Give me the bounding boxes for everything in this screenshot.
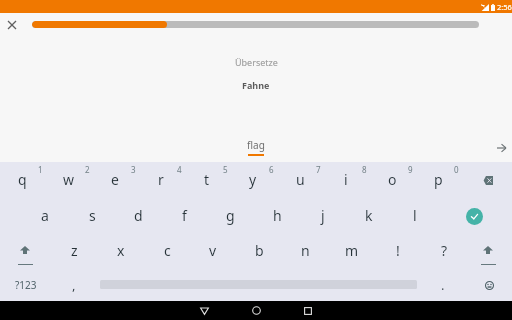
staticText: f xyxy=(182,206,187,225)
staticText: 5 xyxy=(223,164,228,175)
staticText: 9 xyxy=(408,164,413,175)
button[interactable]: a xyxy=(22,199,68,234)
staticText: l xyxy=(413,206,417,225)
staticText: q xyxy=(18,170,27,189)
staticText: m xyxy=(345,241,359,260)
button[interactable]: v xyxy=(190,234,236,269)
staticText: 4 xyxy=(177,164,182,175)
staticText: i xyxy=(344,170,348,189)
button[interactable]: r xyxy=(138,162,184,199)
staticText: ! xyxy=(396,241,400,260)
button[interactable]: j xyxy=(300,199,346,234)
button[interactable]: y xyxy=(230,162,276,199)
button[interactable]: Backspace xyxy=(464,162,511,199)
button[interactable]: d xyxy=(115,199,161,234)
staticText: d xyxy=(134,206,143,225)
button[interactable]: e xyxy=(92,162,138,199)
staticText: . xyxy=(441,276,445,294)
staticText: n xyxy=(301,241,310,260)
button[interactable]: x xyxy=(98,234,144,269)
button[interactable]: s xyxy=(69,199,115,234)
staticText: 1 xyxy=(38,164,43,175)
button[interactable]: . xyxy=(421,269,465,301)
staticText: z xyxy=(71,241,78,260)
button[interactable]: f xyxy=(161,199,207,234)
button[interactable]: h xyxy=(254,199,300,234)
staticText: k xyxy=(365,206,373,225)
button[interactable]: Back xyxy=(186,301,222,320)
button[interactable]: Recents xyxy=(290,301,326,320)
staticText: flag xyxy=(247,138,265,152)
button[interactable]: Close xyxy=(2,15,21,34)
button[interactable]: Emoji xyxy=(467,269,511,301)
button[interactable]: l xyxy=(392,199,438,234)
button[interactable]: z xyxy=(51,234,97,269)
staticText: g xyxy=(226,206,235,225)
button[interactable]: Space xyxy=(98,269,419,301)
button[interactable]: Home xyxy=(238,301,274,320)
staticText: Übersetze xyxy=(235,56,278,68)
button[interactable]: k xyxy=(346,199,392,234)
staticText: 0 xyxy=(454,164,459,175)
button[interactable]: b xyxy=(236,234,282,269)
staticText: Fahne xyxy=(242,79,270,91)
staticText: y xyxy=(249,170,257,189)
button[interactable]: c xyxy=(144,234,190,269)
button[interactable]: , xyxy=(52,269,96,301)
staticText: h xyxy=(273,206,282,225)
staticText: e xyxy=(111,170,119,189)
staticText: 3 xyxy=(131,164,136,175)
staticText: j xyxy=(321,206,325,225)
staticText: ? xyxy=(441,241,448,260)
staticText: b xyxy=(255,241,264,260)
button[interactable]: w xyxy=(46,162,92,199)
staticText: a xyxy=(41,206,49,225)
button[interactable]: q xyxy=(0,162,45,199)
button[interactable]: g xyxy=(207,199,253,234)
staticText: o xyxy=(388,170,397,189)
staticText: s xyxy=(89,206,96,225)
staticText: x xyxy=(117,241,125,260)
staticText: , xyxy=(72,276,76,294)
button[interactable]: n xyxy=(282,234,328,269)
button[interactable]: ?123 xyxy=(2,269,50,301)
staticText: 7 xyxy=(316,164,321,175)
button[interactable]: ? xyxy=(421,234,467,269)
button[interactable]: Enter xyxy=(451,199,498,234)
button[interactable]: Shift xyxy=(465,234,511,269)
staticText: c xyxy=(164,241,171,260)
button[interactable]: Next xyxy=(491,138,511,158)
staticText: v xyxy=(209,241,217,260)
staticText: 2:56 xyxy=(497,2,512,12)
staticText: 2 xyxy=(85,164,90,175)
button[interactable]: t xyxy=(184,162,230,199)
button[interactable]: Shift xyxy=(2,234,48,269)
staticText: p xyxy=(434,170,443,189)
button[interactable]: p xyxy=(415,162,461,199)
staticText: r xyxy=(158,170,164,189)
button[interactable]: u xyxy=(277,162,323,199)
staticText: t xyxy=(204,170,210,189)
staticText: 6 xyxy=(269,164,274,175)
button[interactable]: ! xyxy=(375,234,421,269)
button[interactable]: o xyxy=(369,162,415,199)
staticText: 8 xyxy=(362,164,367,175)
staticText: u xyxy=(296,170,305,189)
staticText: ?123 xyxy=(15,278,37,292)
button[interactable]: i xyxy=(323,162,369,199)
staticText: w xyxy=(63,170,75,189)
button[interactable]: m xyxy=(329,234,375,269)
